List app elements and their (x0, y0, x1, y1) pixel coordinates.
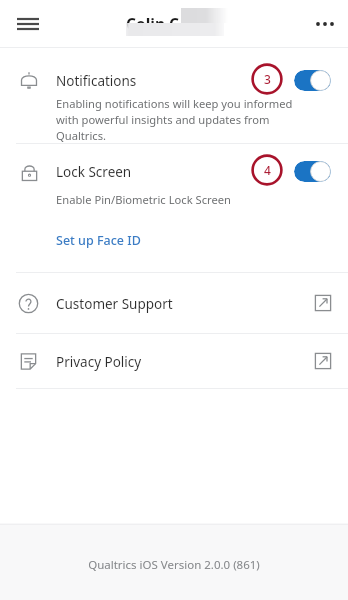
staticText: 3 (264, 71, 271, 87)
button[interactable]: Customer Support (0, 273, 348, 333)
button[interactable]: Notifications (0, 48, 348, 143)
staticText: Enable Pin/Biometric Lock Screen (56, 192, 231, 207)
button[interactable]: Set up Face ID (56, 232, 141, 249)
button[interactable]: Toggle (294, 70, 331, 91)
staticText: Privacy Policy (56, 353, 142, 371)
staticText: Notifications (56, 72, 137, 90)
button[interactable]: More options (308, 7, 342, 41)
staticText: 4 (264, 162, 271, 178)
staticText: Customer Support (56, 295, 173, 313)
staticText: Enabling notifications will keep you inf… (56, 96, 316, 143)
staticText: Qualtrics iOS Version 2.0.0 (861) (88, 557, 260, 573)
staticText: Colin C (126, 13, 179, 34)
button[interactable]: Privacy Policy (0, 334, 348, 388)
staticText: Lock Screen (56, 163, 132, 181)
button[interactable]: Toggle (294, 161, 331, 182)
button[interactable]: Lock Screen (0, 144, 348, 224)
button[interactable]: Menu (12, 8, 44, 40)
staticText: Set up Face ID (56, 232, 141, 249)
